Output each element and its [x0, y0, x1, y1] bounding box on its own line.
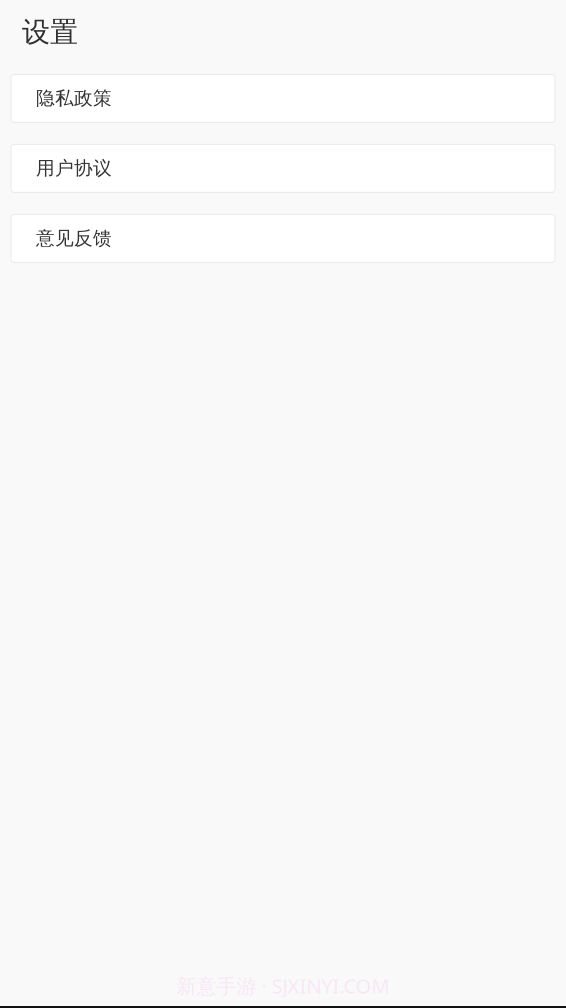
staticText: 用户协议 [36, 157, 112, 180]
staticText: 新意手游 · SJXINYI.COM [176, 972, 389, 999]
button[interactable]: 用户协议 [11, 144, 555, 192]
button[interactable]: 隐私政策 [11, 74, 555, 122]
staticText: 意见反馈 [36, 227, 112, 250]
staticText: 隐私政策 [36, 87, 112, 110]
button[interactable]: 意见反馈 [11, 214, 555, 262]
staticText: 设置 [22, 15, 78, 49]
